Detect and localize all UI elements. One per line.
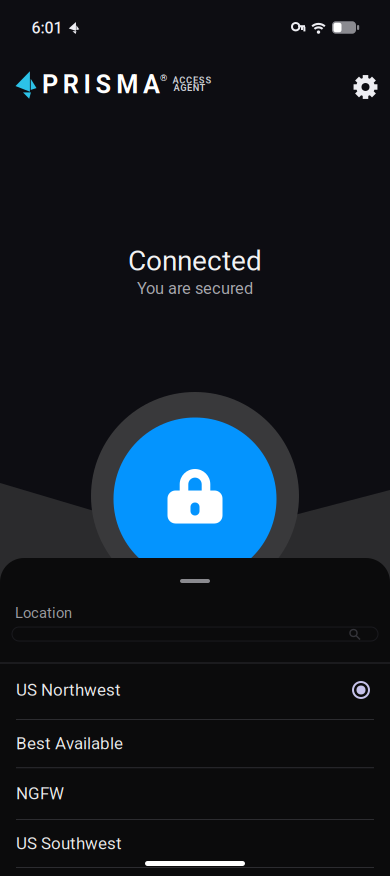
button[interactable]: Settings: [345, 67, 385, 107]
staticText: US Southwest: [16, 834, 122, 853]
button[interactable]: US Southwest: [0, 819, 390, 867]
staticText: You are secured: [137, 279, 253, 298]
button[interactable]: Best Available: [0, 719, 390, 767]
button[interactable]: Search location: [12, 627, 378, 641]
staticText: ®: [160, 72, 167, 83]
staticText: 6:01: [31, 19, 62, 37]
button[interactable]: NGFW: [0, 769, 390, 817]
staticText: Location: [15, 604, 72, 622]
button[interactable]: Disconnect: [113, 417, 276, 580]
staticText: AGENT: [173, 82, 206, 93]
staticText: NGFW: [16, 784, 64, 803]
button[interactable]: US Northwest: [0, 666, 390, 714]
staticText: Best Available: [16, 734, 123, 753]
staticText: PRISMA: [42, 70, 160, 99]
staticText: US Northwest: [16, 680, 121, 700]
staticText: ACCESS: [172, 75, 211, 86]
staticText: Connected: [128, 245, 262, 277]
